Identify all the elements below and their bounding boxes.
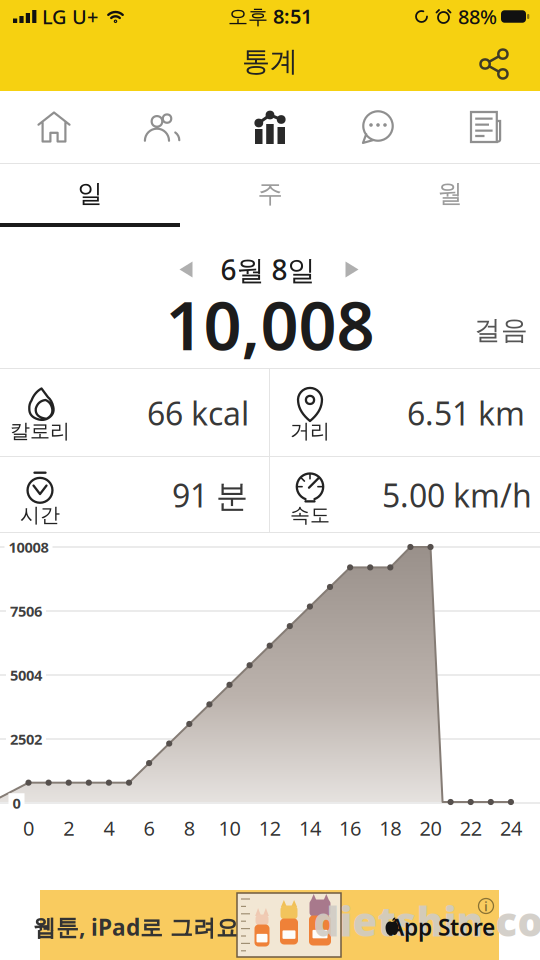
staticText: 8	[184, 815, 195, 841]
staticText: 주	[257, 178, 282, 209]
staticText: 91 분	[172, 474, 248, 516]
staticText: 월	[437, 178, 462, 209]
staticText: dietshin.com	[313, 894, 540, 947]
staticText: 0	[12, 793, 20, 813]
staticText: 7506	[10, 601, 42, 621]
button[interactable]: Previous day	[171, 253, 200, 285]
staticText: 5004	[10, 665, 42, 685]
staticText: 10	[218, 815, 240, 841]
button[interactable]: 일	[0, 164, 180, 223]
staticText: 속도	[290, 503, 330, 527]
staticText: 6	[144, 815, 155, 841]
staticText: 88%	[458, 3, 497, 30]
staticText: 0	[23, 815, 34, 841]
staticText: 18	[379, 815, 401, 841]
staticText: 4	[103, 815, 114, 841]
staticText: 10,008	[165, 280, 374, 369]
button[interactable]: Chat	[324, 91, 432, 163]
staticText: 20	[419, 815, 441, 841]
staticText: 10008	[8, 537, 48, 557]
button[interactable]: 주	[180, 164, 360, 223]
button[interactable]: Statistics	[216, 91, 324, 163]
staticText: i	[484, 897, 488, 915]
button[interactable]: Home	[0, 91, 108, 163]
staticText: 2	[63, 815, 74, 841]
staticText: 웹툰, iPad로 그려요	[33, 912, 239, 942]
staticText: 6.51 km	[407, 392, 525, 434]
staticText: 거리	[290, 419, 330, 443]
staticText: 시간	[20, 503, 60, 527]
staticText: 오후 8:51	[228, 3, 312, 29]
staticText: 5.00 km/h	[382, 474, 532, 516]
staticText: 12	[259, 815, 281, 841]
button[interactable]: 월	[360, 164, 540, 223]
staticText: 22	[460, 815, 482, 841]
staticText: 16	[339, 815, 361, 841]
staticText: 6월 8일	[220, 251, 315, 288]
staticText: 2502	[10, 729, 42, 749]
staticText: 통계	[242, 44, 298, 79]
staticText: LG U+	[42, 3, 98, 30]
button[interactable]: News	[432, 91, 540, 163]
staticText: 걸음	[474, 314, 528, 346]
staticText: 일	[77, 178, 102, 209]
button[interactable]: Friends	[108, 91, 216, 163]
staticText: 66 kcal	[147, 392, 249, 434]
button[interactable]: Next day	[337, 253, 366, 285]
staticText: App Store	[389, 912, 495, 942]
button[interactable]: Share	[469, 38, 518, 89]
staticText: 14	[299, 815, 321, 841]
button[interactable]: Advertisement: 웹툰, iPad로 그려요 - App Store	[40, 890, 499, 960]
staticText: 칼로리	[10, 419, 70, 443]
staticText: 24	[500, 815, 522, 841]
